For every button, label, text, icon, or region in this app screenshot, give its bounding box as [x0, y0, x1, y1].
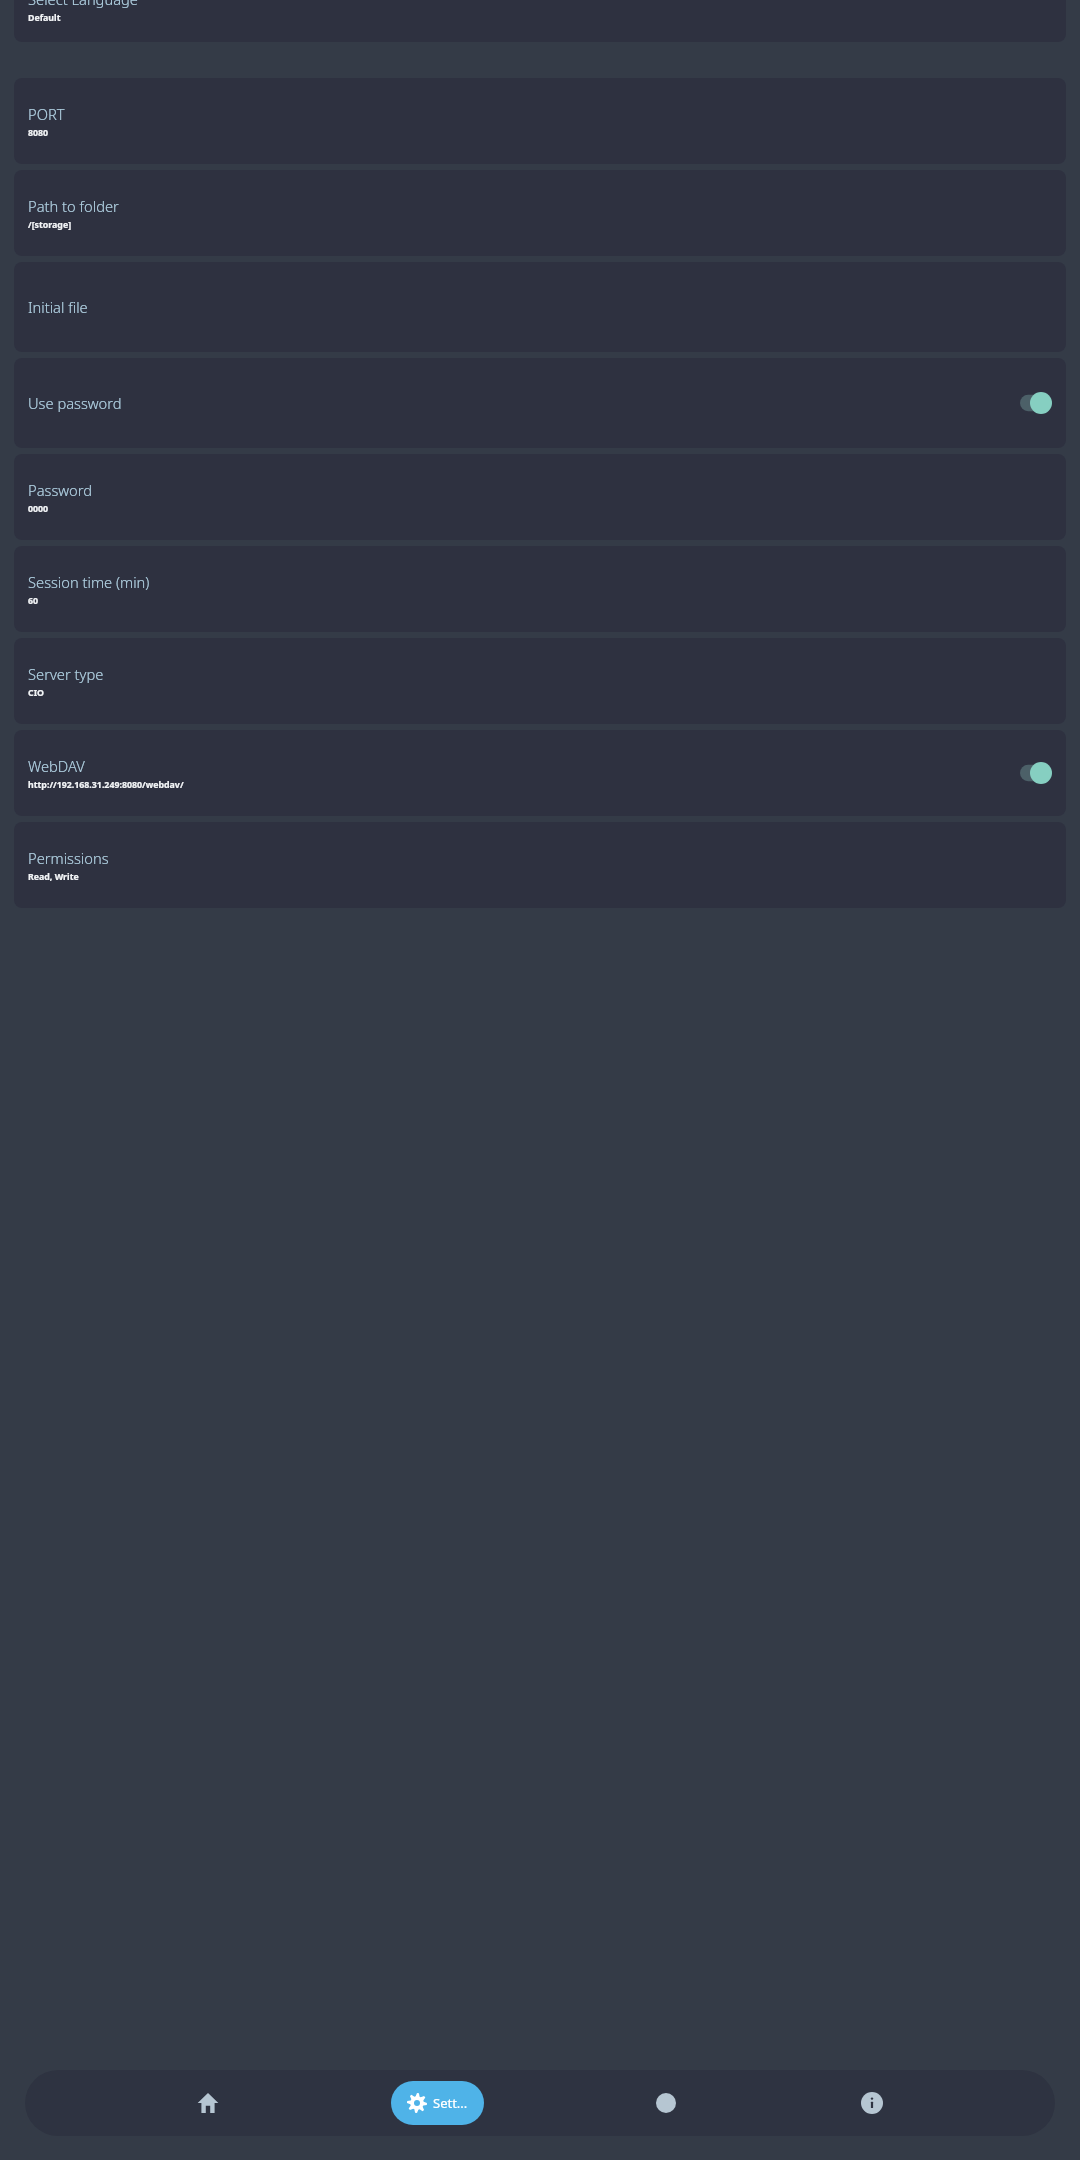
button[interactable]: Server type: [14, 638, 1066, 724]
staticText: Path to folder: [28, 196, 119, 216]
staticText: Initial file: [28, 297, 88, 317]
staticText: Read, Write: [28, 871, 79, 883]
staticText: WebDAV: [28, 756, 85, 776]
staticText: CIO: [28, 687, 45, 699]
button[interactable]: Home: [185, 2080, 231, 2126]
staticText: PORT: [28, 104, 65, 124]
button[interactable]: Toggle WebDAV: [1020, 762, 1052, 784]
staticText: Permissions: [28, 848, 109, 868]
staticText: Use password: [28, 393, 122, 413]
button[interactable]: PORT: [14, 78, 1066, 164]
button[interactable]: Select Language: [14, 0, 1066, 42]
button[interactable]: Initial file: [14, 262, 1066, 352]
button[interactable]: Session time (min): [14, 546, 1066, 632]
button[interactable]: Sett...: [391, 2081, 484, 2125]
staticText: Password: [28, 480, 93, 500]
button[interactable]: Use password: [14, 358, 1066, 448]
button[interactable]: WebDAV: [14, 730, 1066, 816]
button[interactable]: Toggle Use password: [1020, 392, 1052, 414]
button[interactable]: Path to folder: [14, 170, 1066, 256]
staticText: Select Language: [28, 0, 138, 9]
button[interactable]: Files: [643, 2080, 689, 2126]
staticText: 60: [28, 595, 39, 607]
staticText: Default: [28, 12, 61, 24]
staticText: 0000: [28, 503, 49, 515]
staticText: 8080: [28, 127, 49, 139]
staticText: http://192.168.31.249:8080/webdav/: [28, 779, 184, 791]
staticText: Server type: [28, 664, 104, 684]
button[interactable]: Info: [849, 2080, 895, 2126]
button[interactable]: Password: [14, 454, 1066, 540]
staticText: Sett...: [433, 2094, 468, 2112]
button[interactable]: Permissions: [14, 822, 1066, 908]
staticText: Session time (min): [28, 572, 150, 592]
staticText: /[storage]: [28, 219, 72, 231]
